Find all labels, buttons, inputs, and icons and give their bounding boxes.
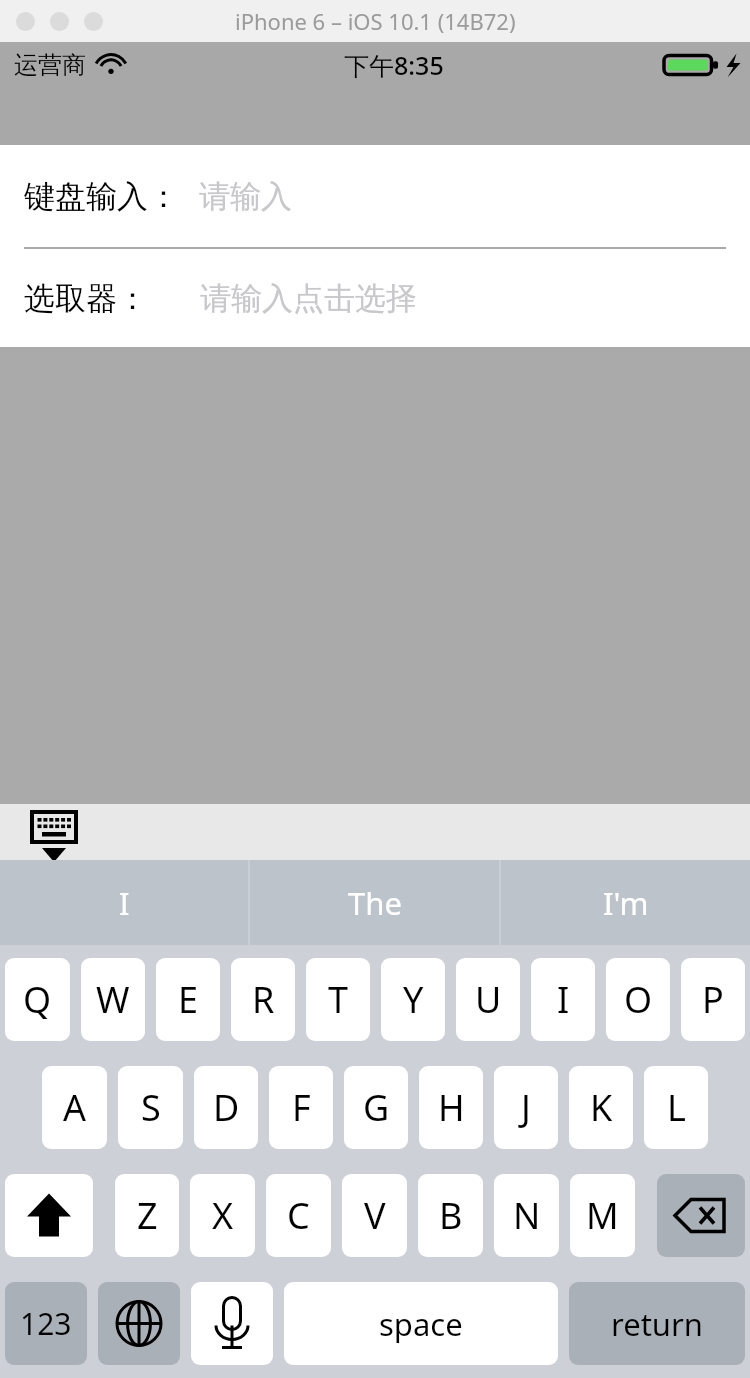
staticText: 选取器：	[24, 279, 148, 318]
button[interactable]: B	[418, 1174, 483, 1257]
staticText: Q	[23, 975, 52, 1024]
staticText: L	[667, 1083, 686, 1132]
button[interactable]: K	[569, 1066, 633, 1149]
button[interactable]: 键盘输入：	[0, 145, 750, 247]
button[interactable]: I'm	[501, 860, 750, 945]
staticText: The	[348, 882, 402, 924]
button[interactable]: 123	[5, 1282, 87, 1365]
button[interactable]: E	[156, 958, 220, 1041]
button[interactable]: Backspace	[657, 1174, 745, 1257]
staticText: A	[63, 1083, 87, 1132]
button[interactable]: O	[606, 958, 670, 1041]
button[interactable]: G	[344, 1066, 408, 1149]
button[interactable]: Window button	[16, 12, 35, 31]
staticText: I	[119, 882, 130, 924]
button[interactable]: Q	[5, 958, 70, 1041]
staticText: N	[513, 1191, 541, 1240]
button[interactable]: F	[269, 1066, 333, 1149]
button[interactable]: T	[306, 958, 370, 1041]
staticText: I	[557, 975, 570, 1024]
staticText: 键盘输入：	[24, 177, 179, 216]
button[interactable]: D	[194, 1066, 258, 1149]
button[interactable]: A	[42, 1066, 107, 1149]
staticText: G	[363, 1083, 390, 1132]
button[interactable]: Y	[381, 958, 445, 1041]
button[interactable]: Shift	[5, 1174, 93, 1257]
button[interactable]: Dictation	[191, 1282, 273, 1365]
staticText: H	[438, 1083, 465, 1132]
staticText: S	[141, 1083, 161, 1132]
button[interactable]: P	[681, 958, 745, 1041]
button[interactable]: 选取器：	[0, 249, 750, 347]
staticText: X	[212, 1191, 234, 1240]
staticText: C	[287, 1191, 310, 1240]
button[interactable]: U	[456, 958, 520, 1041]
staticText: J	[521, 1083, 531, 1132]
button[interactable]: M	[570, 1174, 635, 1257]
staticText: B	[439, 1191, 463, 1240]
staticText: Z	[137, 1191, 158, 1240]
button[interactable]: Window button	[50, 12, 69, 31]
staticText: F	[292, 1083, 311, 1132]
button[interactable]: V	[342, 1174, 407, 1257]
button[interactable]: S	[118, 1066, 183, 1149]
staticText: T	[328, 975, 349, 1024]
staticText: return	[611, 1303, 703, 1345]
button[interactable]: H	[419, 1066, 483, 1149]
staticText: iPhone 6 – iOS 10.1 (14B72)	[235, 6, 516, 36]
button[interactable]: W	[81, 958, 145, 1041]
staticText: P	[702, 975, 724, 1024]
button[interactable]: I	[0, 860, 248, 945]
button[interactable]: Z	[115, 1174, 179, 1257]
staticText: space	[379, 1303, 463, 1345]
button[interactable]: Window button	[84, 12, 103, 31]
button[interactable]: The	[250, 860, 499, 945]
staticText: I'm	[603, 882, 649, 924]
button[interactable]: J	[494, 1066, 558, 1149]
staticText: 123	[20, 1303, 72, 1344]
staticText: R	[252, 975, 275, 1024]
staticText: 运营商	[14, 50, 86, 80]
button[interactable]: return	[569, 1282, 745, 1365]
staticText: Y	[403, 975, 424, 1024]
button[interactable]: C	[266, 1174, 331, 1257]
button[interactable]: R	[231, 958, 295, 1041]
staticText: V	[364, 1191, 386, 1240]
staticText: W	[96, 975, 130, 1024]
staticText: 请输入	[199, 177, 292, 216]
staticText: K	[590, 1083, 613, 1132]
button[interactable]: N	[494, 1174, 559, 1257]
button[interactable]: L	[644, 1066, 708, 1149]
staticText: D	[213, 1083, 240, 1132]
staticText: M	[586, 1191, 619, 1240]
staticText: U	[475, 975, 502, 1024]
button[interactable]: X	[190, 1174, 255, 1257]
staticText: O	[624, 975, 653, 1024]
staticText: E	[178, 975, 199, 1024]
staticText: 下午8:35	[344, 48, 444, 82]
button[interactable]: Hide keyboard	[26, 808, 82, 856]
staticText: 请输入点击选择	[200, 279, 417, 318]
button[interactable]: space	[284, 1282, 558, 1365]
button[interactable]: I	[531, 958, 595, 1041]
button[interactable]: Next keyboard	[98, 1282, 180, 1365]
